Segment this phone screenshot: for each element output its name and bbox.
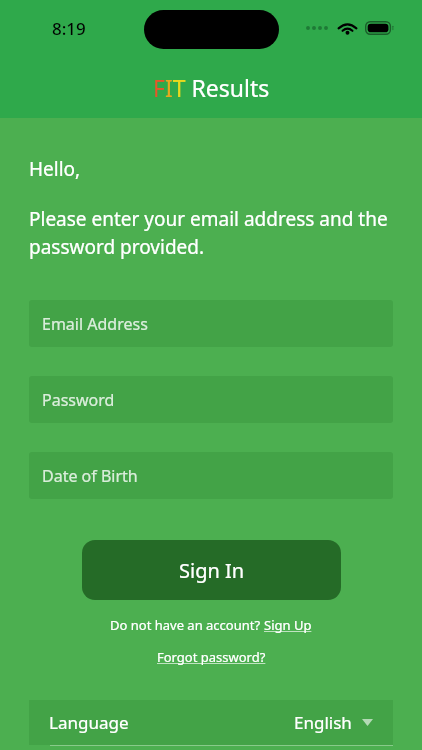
staticText: Password <box>42 389 115 411</box>
button[interactable]: Language <box>29 700 393 745</box>
staticText: Sign Up <box>264 616 312 634</box>
button[interactable]: Sign In <box>82 540 341 600</box>
staticText: Forgot password? <box>157 648 266 666</box>
button[interactable]: Password <box>29 376 393 423</box>
staticText: 8:19 <box>52 17 86 40</box>
staticText: Email Address <box>42 313 148 335</box>
staticText: Do not have an account? <box>110 616 264 634</box>
button[interactable]: Date of Birth <box>29 452 393 499</box>
staticText: Hello, <box>29 156 81 182</box>
staticText: Date of Birth <box>42 465 138 487</box>
staticText: English <box>294 711 352 734</box>
staticText: Sign In <box>179 557 245 584</box>
other: Select language <box>362 719 373 726</box>
staticText: Language <box>49 711 129 734</box>
button[interactable]: Sign Up <box>264 616 312 634</box>
staticText: FIT Results <box>153 72 270 103</box>
button[interactable]: Email Address <box>29 300 393 347</box>
staticText: Please enter your email address and the … <box>29 206 393 260</box>
button[interactable]: Forgot password? <box>157 648 266 666</box>
